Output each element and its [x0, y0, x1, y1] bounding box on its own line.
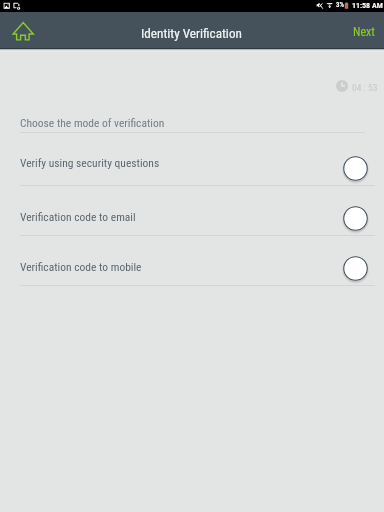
button[interactable]: Verification code to mobile	[0, 236, 384, 286]
staticText: 3%	[336, 1, 344, 9]
staticText: Verification code to mobile	[20, 260, 142, 273]
button[interactable]: Verify using security questions	[0, 133, 384, 186]
button[interactable]: Home	[0, 12, 44, 48]
staticText: 04 : 53	[352, 82, 378, 93]
button[interactable]: Verification code to email	[0, 186, 384, 236]
staticText: Next	[353, 25, 375, 39]
button[interactable]: Next	[341, 12, 384, 48]
staticText: Choose the mode of verification	[20, 116, 165, 129]
staticText: Verify using security questions	[20, 156, 160, 169]
staticText: Identity Verification	[141, 26, 242, 41]
staticText: 11:58 AM	[352, 1, 383, 10]
staticText: Verification code to email	[20, 210, 136, 223]
